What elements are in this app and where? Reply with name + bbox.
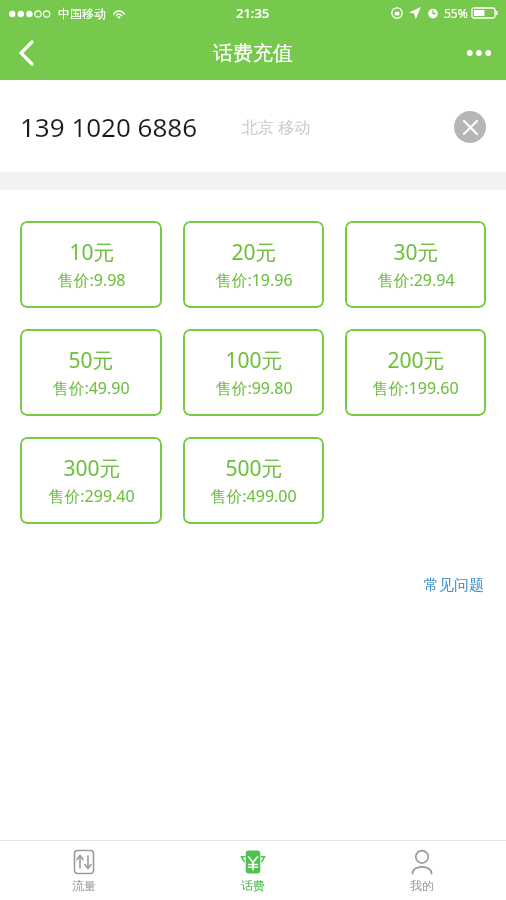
staticText: 中国移动 bbox=[58, 6, 106, 21]
staticText: 售价:299.40 bbox=[48, 485, 135, 507]
staticText: 话费 bbox=[241, 878, 265, 893]
staticText: 30元 bbox=[393, 238, 439, 267]
button[interactable]: More options bbox=[452, 26, 506, 80]
button[interactable]: 50元 bbox=[20, 329, 162, 416]
staticText: 流量 bbox=[72, 878, 96, 893]
staticText: 售价:9.98 bbox=[57, 269, 126, 291]
button[interactable]: 流量 bbox=[0, 844, 168, 898]
button[interactable]: 30元 bbox=[345, 221, 486, 308]
button[interactable]: Back bbox=[0, 27, 52, 79]
button[interactable]: 500元 bbox=[183, 437, 324, 524]
staticText: 10元 bbox=[69, 238, 115, 267]
button[interactable]: 300元 bbox=[20, 437, 162, 524]
button[interactable]: 话费 bbox=[168, 844, 337, 898]
button[interactable]: Clear bbox=[454, 111, 486, 143]
staticText: 200元 bbox=[387, 346, 445, 375]
staticText: 售价:199.60 bbox=[372, 377, 459, 399]
staticText: 我的 bbox=[410, 878, 434, 893]
staticText: 售价:49.90 bbox=[52, 377, 130, 399]
staticText: 售价:19.96 bbox=[215, 269, 293, 291]
staticText: 500元 bbox=[225, 454, 283, 483]
button[interactable]: 10元 bbox=[20, 221, 162, 308]
staticText: 21:35 bbox=[236, 4, 270, 22]
staticText: 139 1020 6886 bbox=[20, 109, 198, 144]
button[interactable]: 200元 bbox=[345, 329, 486, 416]
staticText: 北京 移动 bbox=[242, 116, 311, 138]
staticText: 售价:499.00 bbox=[210, 485, 297, 507]
button[interactable]: 20元 bbox=[183, 221, 324, 308]
staticText: 常见问题 bbox=[424, 576, 484, 595]
staticText: 20元 bbox=[231, 238, 277, 267]
staticText: 话费充值 bbox=[213, 41, 293, 66]
staticText: 售价:99.80 bbox=[215, 377, 293, 399]
staticText: 50元 bbox=[68, 346, 114, 375]
button[interactable]: 100元 bbox=[183, 329, 324, 416]
staticText: 55% bbox=[444, 5, 468, 21]
button[interactable]: 常见问题 bbox=[402, 570, 506, 601]
staticText: 300元 bbox=[63, 454, 121, 483]
staticText: 售价:29.94 bbox=[377, 269, 455, 291]
staticText: 100元 bbox=[225, 346, 283, 375]
button[interactable]: 我的 bbox=[337, 844, 506, 898]
